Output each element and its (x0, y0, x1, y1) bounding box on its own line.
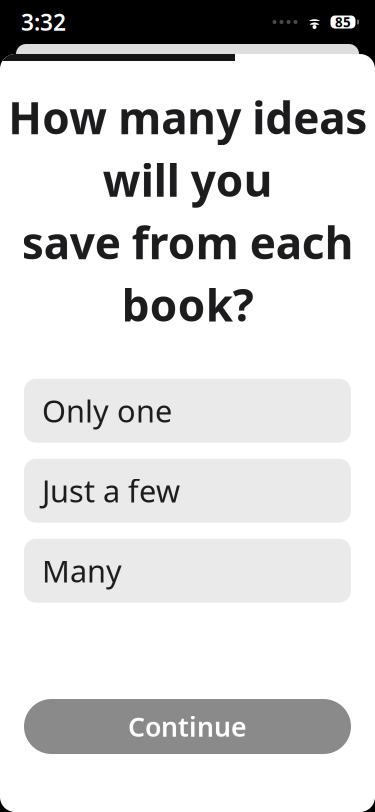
button[interactable]: Continue (24, 699, 351, 754)
staticText: Continue (128, 709, 247, 744)
staticText: Many (42, 550, 122, 591)
staticText: 85 (335, 13, 351, 31)
staticText: Only one (42, 390, 172, 431)
staticText: 3:32 (21, 7, 66, 37)
button[interactable]: Only one (24, 379, 351, 443)
button[interactable]: Just a few (24, 459, 351, 523)
staticText: Just a few (42, 470, 180, 511)
staticText: How many ideas will you save from each b… (8, 88, 367, 334)
button[interactable]: Many (24, 539, 351, 603)
